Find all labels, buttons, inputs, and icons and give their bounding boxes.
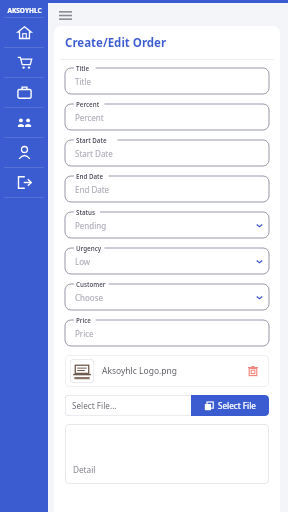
button[interactable]: Urgency xyxy=(65,248,269,274)
button[interactable]: Briefcase xyxy=(0,78,48,107)
button[interactable]: Aksoyhlc Logo.png xyxy=(65,355,269,387)
staticText: Status xyxy=(76,208,96,216)
button[interactable]: Detail xyxy=(65,424,269,484)
staticText: Price xyxy=(76,316,91,324)
staticText: End Date xyxy=(76,172,104,180)
staticText: Start Date xyxy=(75,148,113,159)
staticText: Detail xyxy=(73,464,96,475)
staticText: Low xyxy=(75,256,91,267)
staticText: End Date xyxy=(75,184,110,195)
button[interactable]: Menu xyxy=(56,6,74,24)
button[interactable]: Select File... xyxy=(72,395,191,416)
staticText: Price xyxy=(75,328,94,339)
staticText: Percent xyxy=(76,100,100,108)
button[interactable]: Home xyxy=(0,18,48,47)
staticText: AKSOYHLC xyxy=(7,6,42,15)
staticText: Aksoyhlc Logo.png xyxy=(102,365,178,377)
staticText: Customer xyxy=(76,280,106,288)
button[interactable]: Select File xyxy=(191,395,269,416)
button[interactable]: Customer xyxy=(65,284,269,310)
staticText: Start Date xyxy=(76,136,107,144)
button[interactable]: Profile xyxy=(0,138,48,167)
button[interactable]: Logout xyxy=(0,168,48,197)
button[interactable]: End Date xyxy=(65,176,269,202)
staticText: Title xyxy=(76,64,90,72)
staticText: Urgency xyxy=(76,244,102,252)
button[interactable]: Orders xyxy=(0,48,48,77)
button[interactable]: Price xyxy=(65,320,269,346)
staticText: Select File xyxy=(218,400,256,411)
staticText: Choose xyxy=(75,292,104,303)
staticText: Create/Edit Order xyxy=(65,35,167,51)
button[interactable]: Percent xyxy=(65,104,269,130)
staticText: Pending xyxy=(75,220,107,231)
button[interactable]: Delete file xyxy=(244,362,262,380)
staticText: Percent xyxy=(75,112,104,123)
button[interactable]: Start Date xyxy=(65,140,269,166)
button[interactable]: Title xyxy=(65,68,269,94)
button[interactable]: Customers xyxy=(0,108,48,137)
staticText: Title xyxy=(75,76,91,87)
staticText: Select File... xyxy=(72,400,117,411)
button[interactable]: Status xyxy=(65,212,269,238)
